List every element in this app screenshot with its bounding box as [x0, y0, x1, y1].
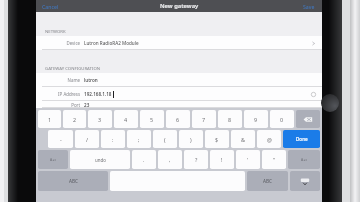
- staticText: !: [221, 156, 223, 163]
- button[interactable]: Port: [36, 101, 322, 108]
- button[interactable]: 0: [270, 110, 294, 128]
- staticText: .: [143, 156, 145, 163]
- button[interactable]: ?: [184, 150, 208, 169]
- button[interactable]: /: [75, 130, 99, 148]
- staticText: lutron: [84, 77, 98, 83]
- staticText: :: [112, 136, 114, 143]
- staticText: ,: [169, 156, 171, 163]
- staticText: 4: [124, 116, 128, 123]
- button[interactable]: Cancel: [39, 2, 62, 11]
- staticText: 6: [176, 116, 180, 123]
- button[interactable]: IP Address: [36, 87, 322, 101]
- button[interactable]: 6: [166, 110, 190, 128]
- staticText: 3: [98, 116, 102, 123]
- staticText: Done: [296, 136, 308, 142]
- button[interactable]: 3: [88, 110, 112, 128]
- button[interactable]: (: [153, 130, 177, 148]
- button[interactable]: ": [262, 150, 286, 169]
- staticText: ABC: [69, 178, 78, 184]
- button[interactable]: ABC: [38, 171, 108, 191]
- staticText: @: [267, 136, 272, 143]
- staticText: Name: [67, 77, 80, 83]
- button[interactable]: 7: [192, 110, 216, 128]
- staticText: (: [164, 136, 166, 143]
- staticText: /: [86, 136, 89, 143]
- staticText: Port: [71, 102, 80, 108]
- staticText: 8: [228, 116, 232, 123]
- button[interactable]: :: [101, 130, 125, 148]
- button[interactable]: $: [205, 130, 229, 148]
- button[interactable]: !: [210, 150, 234, 169]
- button[interactable]: 9: [244, 110, 268, 128]
- button[interactable]: #+=: [38, 150, 68, 169]
- staticText: Device: [66, 40, 80, 46]
- staticText: 192.168.1.18: [84, 91, 112, 97]
- staticText: 5: [150, 116, 154, 123]
- staticText: 2: [73, 116, 77, 123]
- staticText: Save: [303, 3, 315, 10]
- button[interactable]: 1: [38, 110, 61, 128]
- staticText: 23: [84, 102, 90, 108]
- staticText: 0: [280, 116, 284, 123]
- button[interactable]: ): [179, 130, 203, 148]
- button[interactable]: undo: [70, 150, 130, 169]
- staticText: GATEWAY CONFIGURATION: [45, 65, 101, 71]
- staticText: Cancel: [42, 3, 59, 10]
- button[interactable]: 8: [218, 110, 242, 128]
- staticText: 7: [202, 116, 206, 123]
- staticText: Lutron RadioRA2 Module: [84, 40, 139, 46]
- staticText: 1: [48, 116, 52, 123]
- staticText: ): [190, 136, 192, 143]
- staticText: 9: [254, 116, 258, 123]
- button[interactable]: .: [132, 150, 156, 169]
- staticText: undo: [95, 157, 106, 163]
- staticText: ABC: [263, 178, 272, 184]
- staticText: #+=: [301, 157, 308, 162]
- button[interactable]: Done: [283, 130, 320, 148]
- button[interactable]: #+=: [288, 150, 320, 169]
- staticText: IP Address: [58, 91, 80, 97]
- staticText: New gateway: [160, 2, 199, 10]
- staticText: ": [273, 156, 276, 163]
- staticText: &: [241, 136, 245, 143]
- button[interactable]: Hide keyboard: [290, 171, 320, 191]
- button[interactable]: ': [236, 150, 260, 169]
- button[interactable]: ;: [127, 130, 151, 148]
- staticText: -: [60, 136, 62, 143]
- button[interactable]: 5: [140, 110, 164, 128]
- button[interactable]: Backspace: [296, 110, 320, 128]
- staticText: ': [247, 156, 249, 163]
- staticText: #+=: [50, 157, 57, 162]
- button[interactable]: 4: [114, 110, 138, 128]
- staticText: NETWORK: [45, 28, 66, 34]
- staticText: ?: [195, 156, 198, 163]
- button[interactable]: Home: [321, 94, 339, 112]
- button[interactable]: ,: [158, 150, 182, 169]
- staticText: ;: [138, 136, 140, 143]
- button[interactable]: 2: [63, 110, 86, 128]
- button[interactable]: Device: [36, 36, 322, 50]
- button[interactable]: &: [231, 130, 255, 148]
- staticText: $: [215, 136, 219, 143]
- button[interactable]: Name: [36, 73, 322, 87]
- button[interactable]: ABC: [247, 171, 288, 191]
- button[interactable]: Save: [300, 2, 318, 11]
- button[interactable]: @: [257, 130, 281, 148]
- button[interactable]: -: [48, 130, 73, 148]
